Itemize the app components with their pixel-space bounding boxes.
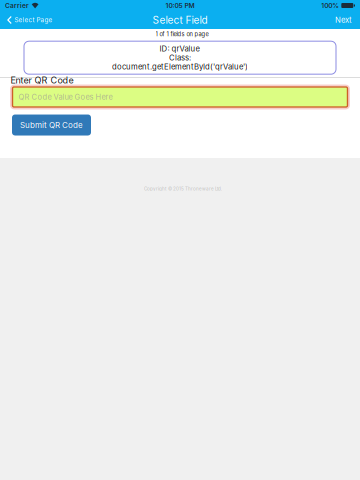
staticText: Copyright © 2015 Throneware Ltd. bbox=[144, 186, 222, 192]
staticText: Class: bbox=[169, 53, 191, 62]
staticText: 1 of 1 fields on page bbox=[155, 31, 208, 38]
staticText: document.getElementById('qrValue') bbox=[112, 62, 248, 71]
staticText: ID: qrValue bbox=[159, 44, 200, 53]
button[interactable]: Select Page bbox=[0, 11, 58, 29]
staticText: Enter QR Code bbox=[10, 75, 73, 86]
staticText: QR Code Value Goes Here bbox=[18, 92, 112, 101]
button[interactable]: Submit QR Code bbox=[12, 114, 91, 135]
staticText: Select Page bbox=[15, 16, 53, 24]
staticText: Next bbox=[335, 15, 352, 25]
staticText: Select Field bbox=[152, 14, 207, 26]
button[interactable]: Next bbox=[327, 11, 360, 29]
staticText: Submit QR Code bbox=[20, 120, 83, 130]
staticText: 10:05 PM bbox=[165, 1, 194, 10]
staticText: Carrier bbox=[5, 1, 29, 10]
staticText: 100% bbox=[321, 1, 339, 10]
